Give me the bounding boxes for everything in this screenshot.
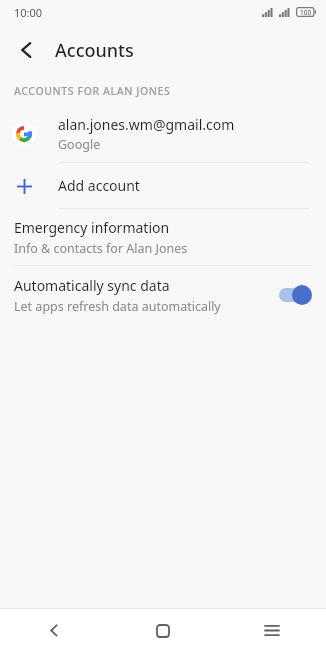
button[interactable]: alan.jones.wm@gmail.com: [0, 106, 326, 162]
button[interactable]: Back: [0, 609, 108, 652]
staticText: Accounts: [55, 38, 134, 63]
button[interactable]: Recent apps: [217, 609, 326, 652]
staticText: Emergency information: [14, 218, 170, 237]
button[interactable]: Automatically sync data: [278, 284, 312, 306]
staticText: Automatically sync data: [14, 276, 170, 295]
staticText: 10:00: [14, 5, 43, 20]
staticText: Google: [58, 136, 101, 153]
button[interactable]: Add account: [0, 163, 326, 208]
staticText: ACCOUNTS FOR ALAN JONES: [14, 84, 171, 98]
button[interactable]: Back: [9, 32, 45, 68]
staticText: Let apps refresh data automatically: [14, 298, 221, 315]
staticText: alan.jones.wm@gmail.com: [58, 115, 235, 134]
button[interactable]: Home: [108, 609, 217, 652]
staticText: 100: [300, 8, 312, 17]
staticText: Add account: [58, 176, 140, 195]
button[interactable]: Automatically sync data: [0, 266, 326, 324]
staticText: Info & contacts for Alan Jones: [14, 240, 188, 257]
button[interactable]: Emergency information: [0, 209, 326, 265]
